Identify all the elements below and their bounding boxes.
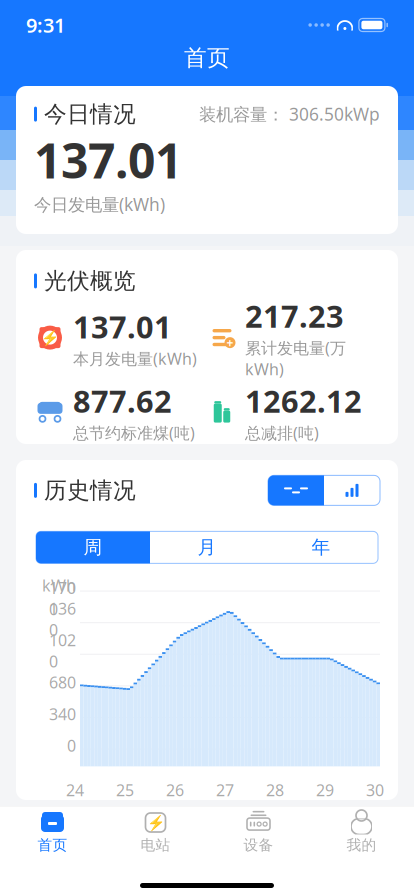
button[interactable]: 月: [150, 531, 264, 563]
staticText: 设备: [243, 836, 273, 854]
staticText: 总节约标准煤(吨): [73, 422, 195, 443]
button[interactable]: 周: [36, 531, 150, 563]
staticText: 周: [83, 536, 102, 559]
staticText: 25: [116, 779, 134, 801]
staticText: +: [226, 335, 233, 351]
staticText: 累计发电量(万kWh): [245, 337, 346, 380]
staticText: 1700: [49, 577, 76, 620]
staticText: 装机容量： 306.50kWp: [199, 103, 380, 126]
staticText: 历史情况: [44, 476, 136, 504]
staticText: 137.01: [73, 306, 172, 347]
staticText: 26: [166, 779, 184, 801]
staticText: 总减排(吨): [245, 422, 319, 443]
staticText: 本月发电量(kWh): [73, 348, 197, 369]
staticText: 1020: [49, 629, 76, 672]
staticText: 年: [311, 536, 330, 559]
button[interactable]: 柱状图: [324, 475, 380, 505]
staticText: 我的: [346, 836, 376, 854]
button[interactable]: 折线图: [268, 475, 324, 505]
staticText: 27: [216, 779, 234, 801]
staticText: 680: [49, 672, 76, 693]
staticText: ⚡: [146, 814, 164, 831]
staticText: 217.23: [245, 295, 344, 336]
staticText: 137.01: [34, 128, 182, 192]
staticText: 24: [66, 779, 84, 801]
button[interactable]: ⚡: [104, 806, 207, 855]
staticText: 今日发电量(kWh): [34, 193, 165, 216]
button[interactable]: 年: [264, 531, 378, 563]
staticText: 340: [49, 703, 76, 725]
staticText: 首页: [184, 44, 230, 72]
staticText: 光伏概览: [44, 267, 136, 295]
button[interactable]: 设备: [207, 806, 310, 855]
staticText: 今日情况: [44, 100, 136, 128]
staticText: kWh: [42, 575, 76, 596]
staticText: 1360: [49, 598, 76, 640]
button[interactable]: 首页: [1, 806, 104, 855]
staticText: 29: [316, 779, 334, 801]
staticText: ⚡: [41, 329, 59, 346]
staticText: 30: [366, 779, 384, 801]
staticText: 电站: [140, 836, 170, 854]
staticText: 0: [67, 735, 76, 756]
staticText: 1262.12: [245, 380, 362, 421]
button[interactable]: 我的: [310, 806, 413, 855]
staticText: 28: [266, 779, 284, 801]
staticText: 月: [197, 536, 216, 559]
staticText: 9:31: [26, 12, 65, 38]
staticText: 首页: [37, 836, 67, 854]
staticText: 877.62: [73, 380, 172, 421]
